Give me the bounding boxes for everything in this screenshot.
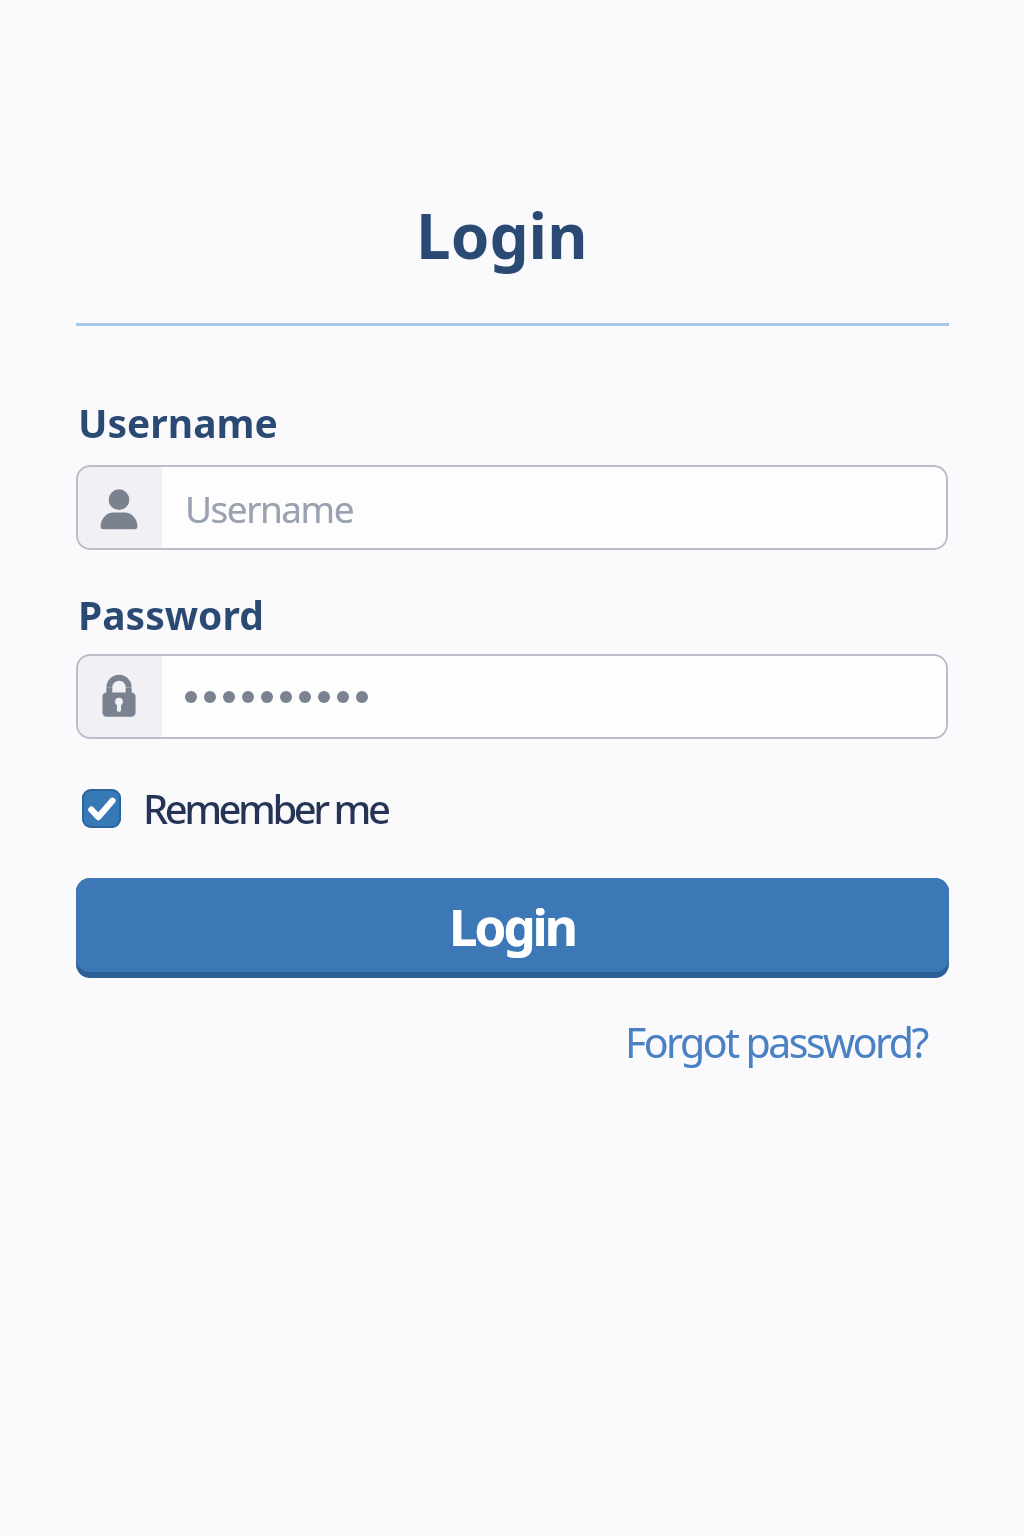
button[interactable]: Remember me — [82, 781, 388, 835]
button[interactable] — [76, 654, 948, 739]
button[interactable]: Login — [76, 878, 949, 978]
staticText: Username — [185, 483, 354, 533]
staticText: Password — [78, 588, 264, 641]
staticText: Login — [416, 193, 588, 277]
button[interactable]: Forgot password? — [625, 1014, 927, 1070]
staticText: Login — [449, 891, 576, 960]
button[interactable]: Username — [76, 465, 948, 550]
staticText: Username — [78, 396, 278, 449]
staticText: Remember me — [143, 781, 388, 835]
